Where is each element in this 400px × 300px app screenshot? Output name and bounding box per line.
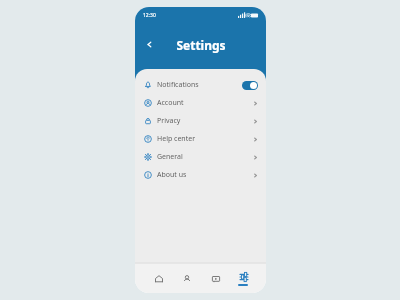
- button[interactable]: Privacy: [135, 112, 266, 130]
- button[interactable]: General: [135, 148, 266, 166]
- staticText: Privacy: [157, 116, 181, 126]
- button[interactable]: About us: [135, 166, 266, 184]
- button[interactable]: Back: [141, 36, 157, 52]
- button[interactable]: Media: [204, 263, 226, 293]
- button[interactable]: Profile: [175, 263, 197, 293]
- button[interactable]: Settings: [232, 263, 254, 293]
- button[interactable]: Home: [147, 263, 169, 293]
- staticText: About us: [157, 170, 187, 180]
- button[interactable]: Notifications: [135, 76, 266, 94]
- staticText: Notifications: [157, 80, 199, 90]
- staticText: 12:30: [143, 12, 156, 19]
- staticText: General: [157, 152, 183, 162]
- staticText: Settings: [176, 37, 226, 53]
- staticText: Account: [157, 98, 184, 108]
- staticText: Help center: [157, 134, 196, 144]
- button[interactable]: Notifications toggle: [242, 81, 258, 90]
- button[interactable]: Help center: [135, 130, 266, 148]
- button[interactable]: Account: [135, 94, 266, 112]
